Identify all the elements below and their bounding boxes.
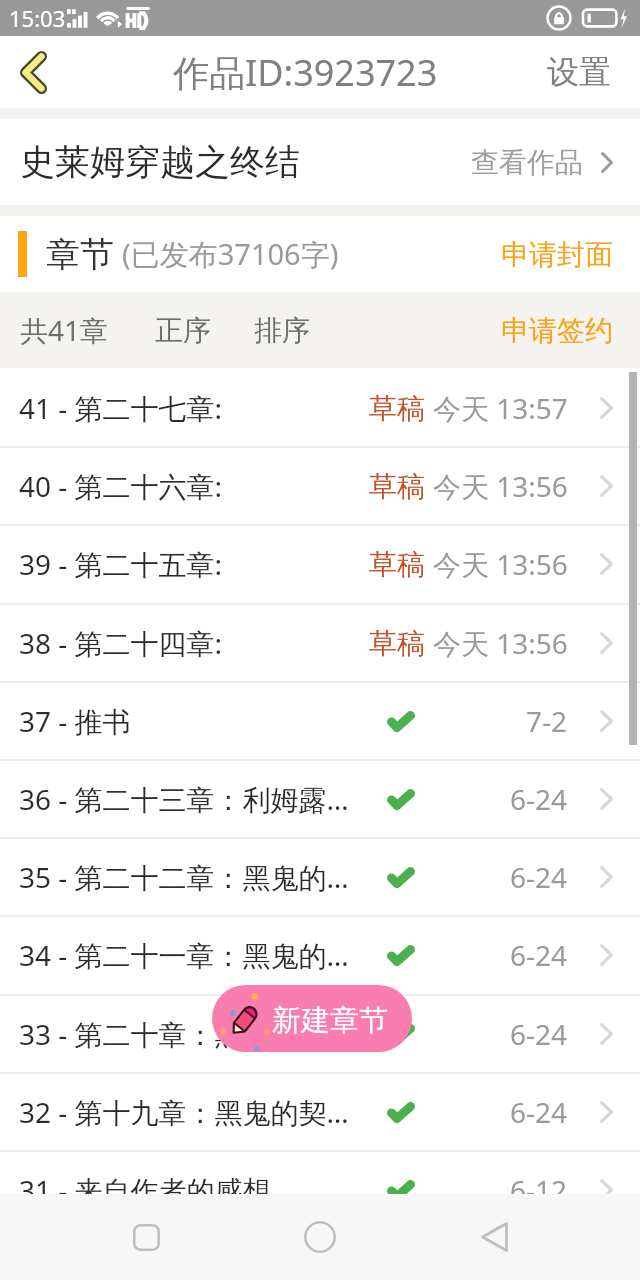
button[interactable]: 35 - 第二十二章：黑鬼的… [0, 839, 640, 915]
button[interactable]: 正序 [155, 292, 211, 368]
button[interactable]: 新建章节 [212, 985, 412, 1052]
staticText: 34 - 第二十一章：黑鬼的… [19, 936, 359, 974]
staticText: (已发布37106字) [122, 234, 339, 274]
button[interactable]: 32 - 第十九章：黑鬼的契… [0, 1074, 640, 1150]
staticText: 草稿 [369, 547, 425, 582]
staticText: 今天 13:56 [433, 624, 568, 662]
button[interactable]: 36 - 第二十三章：利姆露… [0, 761, 640, 837]
staticText: 6-24 [510, 1015, 568, 1053]
staticText: 35 - 第二十二章：黑鬼的… [19, 858, 359, 896]
button[interactable]: Back [0, 36, 66, 108]
button[interactable]: 共41章 [20, 292, 109, 368]
staticText: 排序 [254, 313, 310, 348]
staticText: 6-24 [510, 936, 568, 974]
staticText: 新建章节 [272, 1002, 388, 1039]
button[interactable]: Recent apps [103, 1194, 189, 1280]
button[interactable]: 38 - 第二十四章: [0, 605, 640, 681]
button[interactable]: 排序 [254, 292, 310, 368]
button[interactable]: 史莱姆穿越之终结 [0, 119, 640, 205]
staticText: 史莱姆穿越之终结 [20, 140, 300, 184]
button[interactable]: 申请签约 [474, 292, 640, 368]
staticText: 今天 13:56 [433, 467, 568, 505]
staticText: 6-24 [510, 858, 568, 896]
staticText: 草稿 [369, 391, 425, 426]
button[interactable]: 40 - 第二十六章: [0, 448, 640, 524]
staticText: 申请签约 [501, 313, 613, 348]
button[interactable]: 41 - 第二十七章: [0, 370, 640, 446]
button[interactable]: 39 - 第二十五章: [0, 526, 640, 602]
staticText: 查看作品 [471, 145, 583, 180]
staticText: 今天 13:56 [433, 545, 568, 583]
button[interactable]: Back [451, 1194, 537, 1280]
staticText: 草稿 [369, 626, 425, 661]
button[interactable]: 37 - 推书 [0, 683, 640, 759]
staticText: 今天 13:57 [433, 389, 568, 427]
staticText: 38 - 第二十四章: [19, 624, 359, 662]
staticText: 40 - 第二十六章: [19, 467, 359, 505]
staticText: 6-24 [510, 780, 568, 818]
button[interactable]: 33 - 第二十章：黑鬼的… [0, 996, 640, 1072]
staticText: 15:03 [9, 3, 66, 33]
staticText: 作品ID:3923723 [173, 48, 438, 97]
staticText: 共41章 [20, 311, 109, 349]
button[interactable]: 34 - 第二十一章：黑鬼的… [0, 917, 640, 993]
staticText: 39 - 第二十五章: [19, 545, 359, 583]
staticText: 6-12 [510, 1171, 568, 1194]
staticText: 36 - 第二十三章：利姆露… [19, 780, 359, 818]
staticText: 6-24 [510, 1093, 568, 1131]
staticText: 正序 [155, 313, 211, 348]
staticText: 41 - 第二十七章: [19, 389, 359, 427]
button[interactable]: Home [277, 1194, 363, 1280]
button[interactable]: 31 - 来自作者的感想 [0, 1152, 640, 1194]
staticText: 37 - 推书 [19, 702, 359, 740]
button[interactable]: 申请封面 [474, 216, 640, 292]
staticText: 33 - 第二十章：黑鬼的… [19, 1015, 359, 1053]
staticText: 设置 [547, 52, 611, 92]
staticText: 7-2 [526, 702, 568, 740]
staticText: 章节 [46, 233, 114, 276]
staticText: 32 - 第十九章：黑鬼的契… [19, 1093, 359, 1131]
staticText: 草稿 [369, 469, 425, 504]
staticText: 31 - 来自作者的感想 [19, 1171, 359, 1194]
staticText: 申请封面 [501, 237, 613, 272]
button[interactable]: 设置 [518, 36, 640, 108]
